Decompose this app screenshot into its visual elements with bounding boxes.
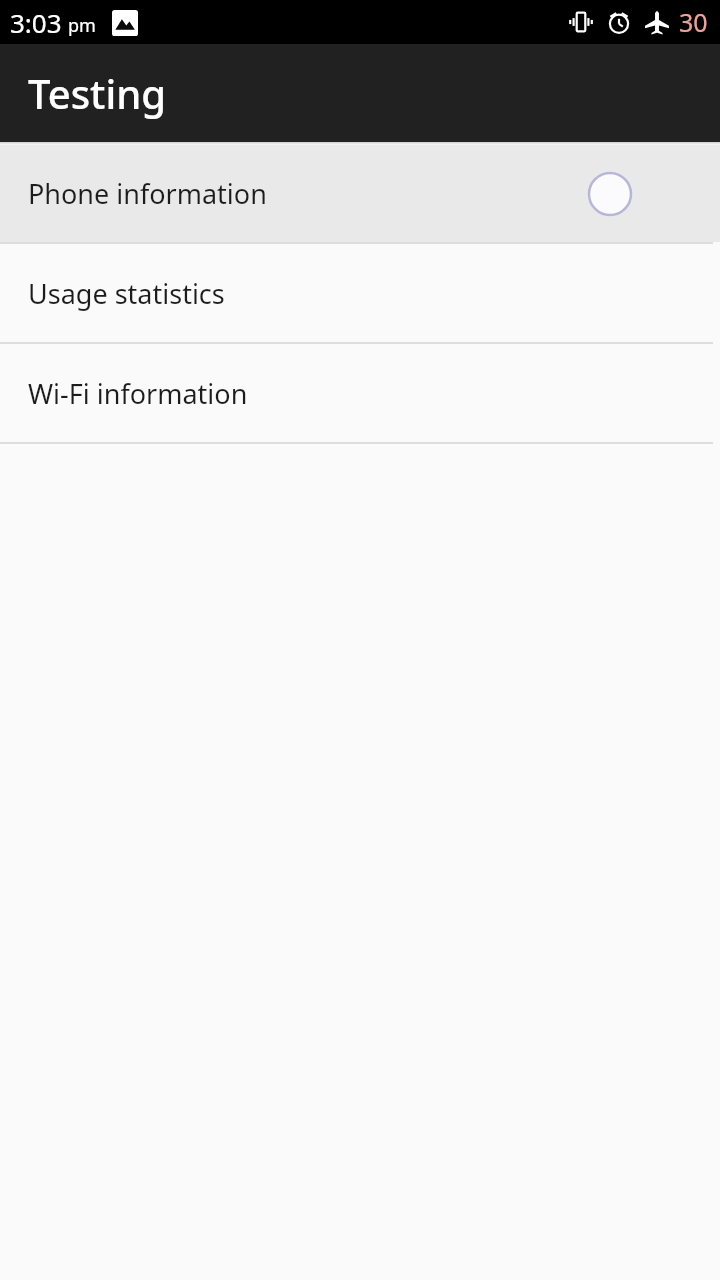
staticText: Usage statistics xyxy=(28,275,225,312)
staticText: 30 xyxy=(679,5,708,39)
staticText: Phone information xyxy=(28,175,267,212)
button[interactable]: Usage statistics xyxy=(0,244,720,342)
other: Alarm set xyxy=(606,9,632,35)
button[interactable]: Phone information xyxy=(0,145,720,242)
staticText: Testing xyxy=(28,66,167,120)
staticText: Wi-Fi information xyxy=(28,375,248,412)
button[interactable]: Wi-Fi information xyxy=(0,344,720,442)
staticText: 3:03 xyxy=(10,5,62,40)
other: Airplane mode xyxy=(644,9,670,35)
other: Vibrate mode xyxy=(568,9,594,35)
staticText: pm xyxy=(68,13,96,38)
